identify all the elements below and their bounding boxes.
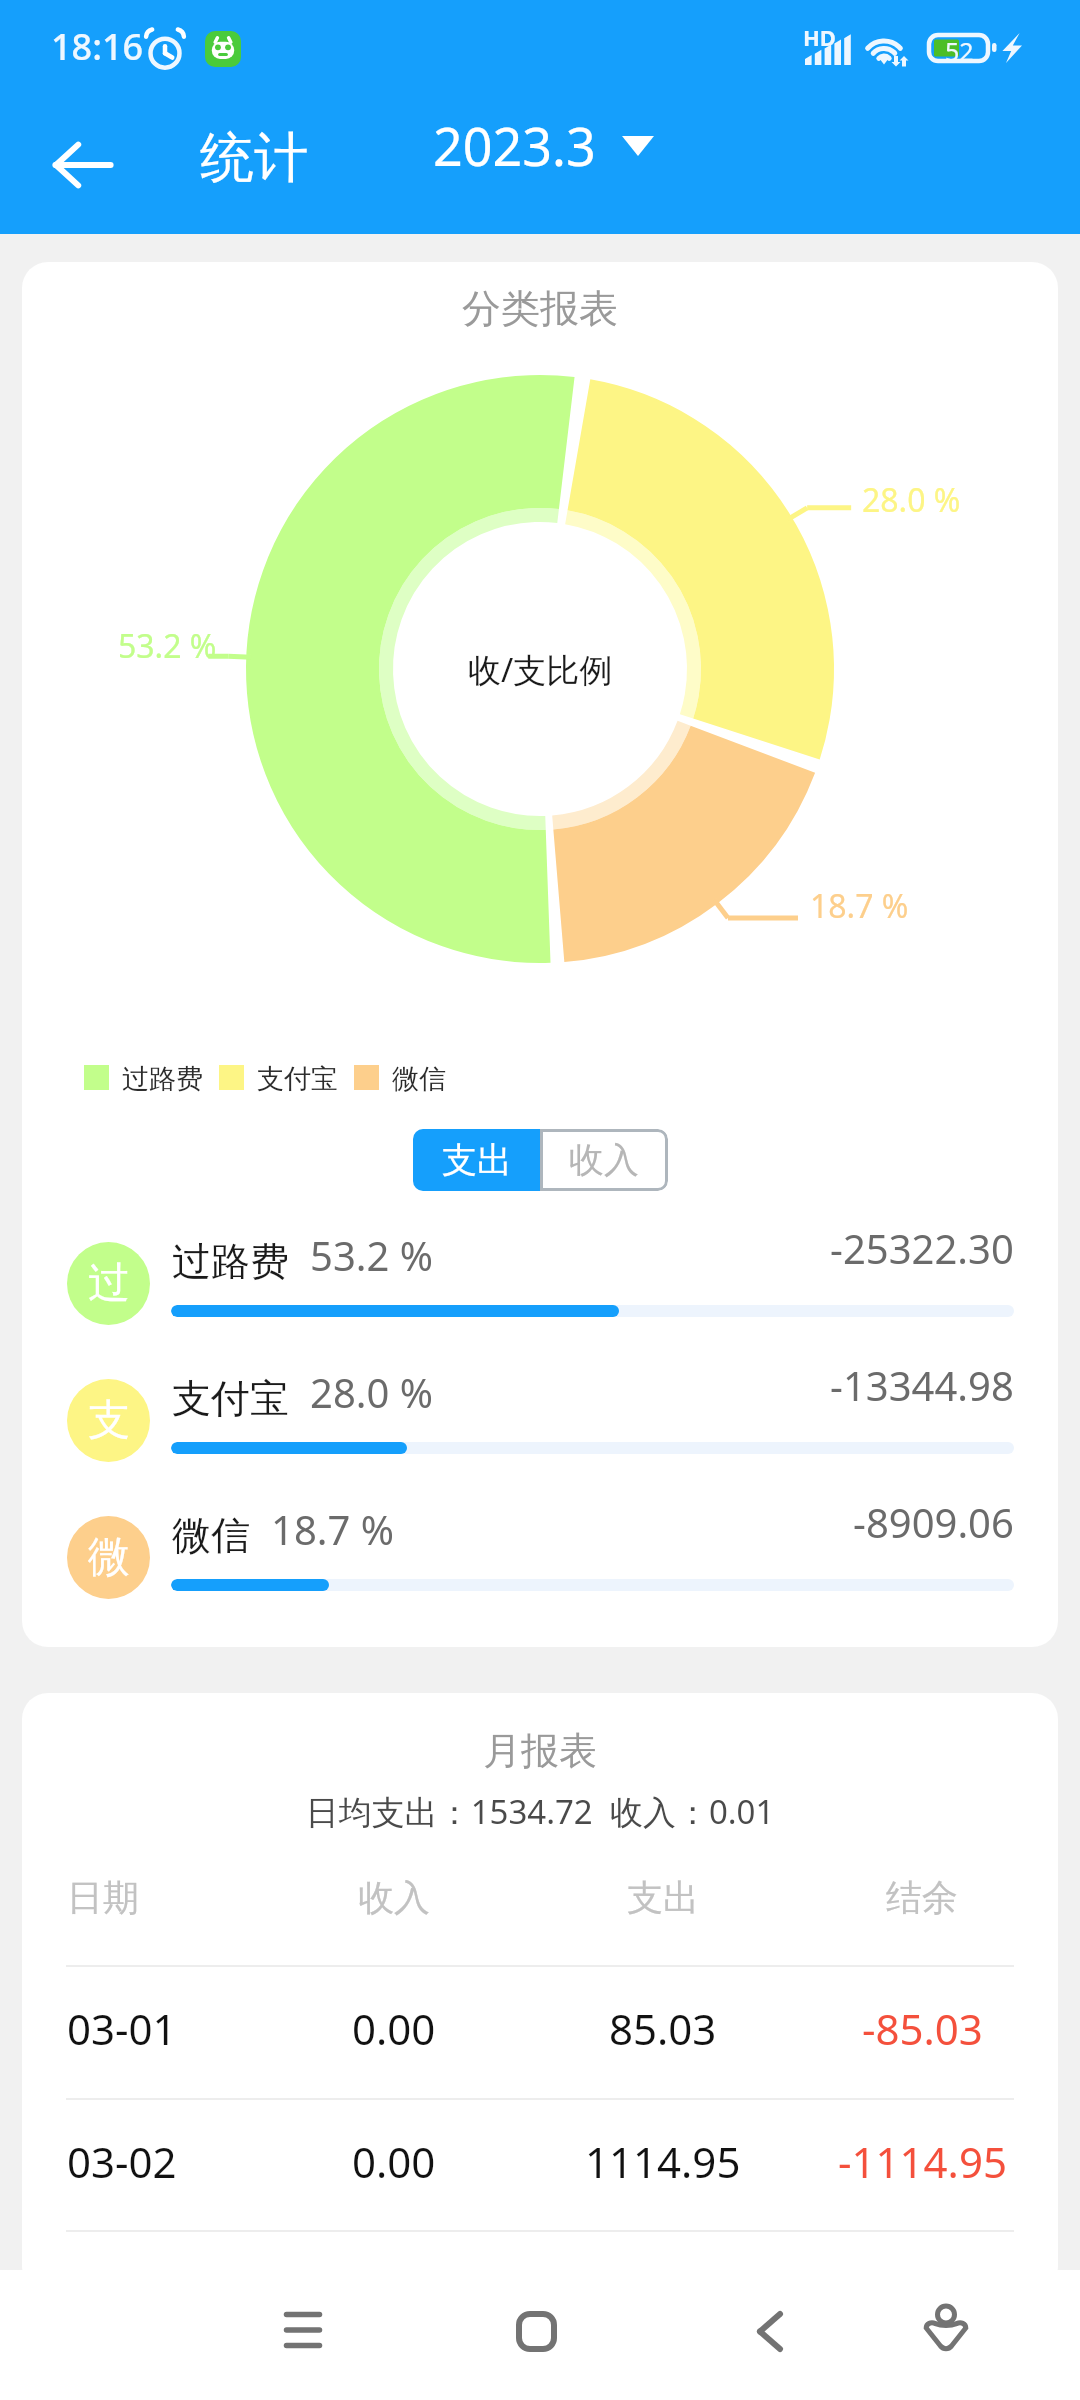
staticText: 结余 <box>886 1875 958 1920</box>
staticText: 0.00 <box>352 2000 436 2057</box>
staticText: 18.7 % <box>810 884 909 928</box>
staticText: 微信 <box>392 1062 446 1092</box>
staticText: -13344.98 <box>830 1358 1014 1412</box>
button[interactable]: 支出 <box>413 1129 540 1191</box>
button[interactable]: Home <box>482 2277 590 2385</box>
staticText: 28.0 % <box>310 1365 433 1419</box>
staticText: 28.0 % <box>862 478 961 522</box>
staticText: 月报表 <box>22 1727 1058 1775</box>
staticText: 收入 <box>569 1138 639 1182</box>
button[interactable]: Assistant <box>892 2273 1000 2381</box>
staticText: 微 <box>88 1531 130 1584</box>
staticText: -85.03 <box>862 2000 983 2057</box>
staticText: 2023.3 <box>433 110 596 181</box>
staticText: 18:16 <box>51 22 144 71</box>
button[interactable]: 2023.3 <box>433 110 654 181</box>
button[interactable]: 过 <box>22 1221 1058 1331</box>
button[interactable]: Back <box>716 2277 824 2385</box>
staticText: 日期 <box>67 1875 139 1920</box>
staticText: 收入 <box>358 1875 430 1920</box>
staticText: 53.2 % <box>310 1228 433 1282</box>
staticText: 03-02 <box>67 2133 177 2190</box>
staticText: 53.2 % <box>118 624 217 668</box>
staticText: 统计 <box>200 124 308 192</box>
staticText: 收/支比例 <box>468 647 613 692</box>
button[interactable]: 收入 <box>540 1129 668 1191</box>
staticText: 0.00 <box>352 2133 436 2190</box>
staticText: 过 <box>88 1257 130 1310</box>
staticText: 85.03 <box>609 2000 717 2057</box>
staticText: 过路费 <box>122 1062 203 1092</box>
staticText: 支付宝 <box>172 1374 289 1423</box>
staticText: -1114.95 <box>838 2133 1007 2190</box>
staticText: 52 <box>945 34 974 66</box>
button[interactable]: Menu <box>249 2276 357 2384</box>
staticText: 支出 <box>442 1138 512 1182</box>
staticText: 分类报表 <box>22 284 1058 333</box>
staticText: -25322.30 <box>830 1221 1014 1275</box>
staticText: 日均支出：1534.72 收入：0.01 <box>22 1789 1058 1834</box>
staticText: HD <box>803 22 836 52</box>
button[interactable]: 支 <box>22 1358 1058 1468</box>
staticText: 支付宝 <box>257 1062 338 1092</box>
staticText: 支 <box>88 1394 130 1447</box>
staticText: 过路费 <box>172 1237 289 1286</box>
staticText: 1114.95 <box>585 2133 741 2190</box>
staticText: 微信 <box>172 1511 250 1560</box>
staticText: -8909.06 <box>853 1495 1014 1549</box>
staticText: 支出 <box>627 1875 699 1920</box>
button[interactable]: 微 <box>22 1495 1058 1605</box>
button[interactable]: Back <box>38 120 128 210</box>
staticText: 03-01 <box>67 2000 177 2057</box>
staticText: 18.7 % <box>271 1502 394 1556</box>
